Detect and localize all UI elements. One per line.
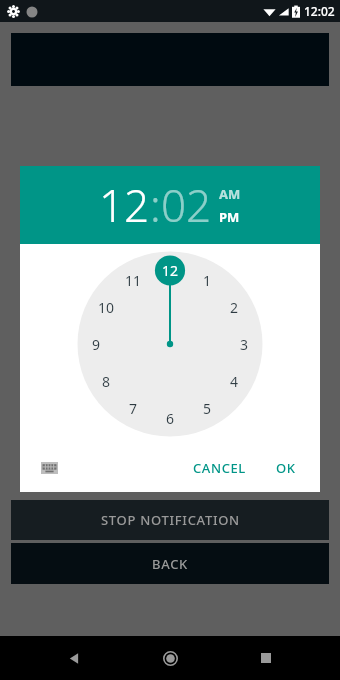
staticText: 5 bbox=[203, 399, 212, 418]
button[interactable]: AM bbox=[219, 185, 241, 203]
staticText: 9 bbox=[92, 335, 101, 354]
staticText: 10 bbox=[98, 298, 115, 317]
button[interactable]: 12 bbox=[99, 175, 150, 235]
staticText: 12 bbox=[162, 261, 179, 280]
button[interactable]: OK bbox=[268, 451, 304, 485]
button[interactable]: 02 bbox=[161, 175, 212, 235]
staticText: 3 bbox=[240, 335, 249, 354]
staticText: : bbox=[150, 175, 161, 235]
staticText: 11 bbox=[125, 271, 142, 290]
staticText: OK bbox=[276, 459, 296, 477]
staticText: BACK bbox=[152, 555, 189, 573]
staticText: 12:02 bbox=[304, 3, 335, 19]
button[interactable]: STOP NOTIFICATION bbox=[11, 500, 329, 540]
button[interactable]: BACK bbox=[11, 543, 329, 584]
button[interactable]: Switch to keyboard input bbox=[34, 453, 64, 483]
staticText: 8 bbox=[102, 372, 111, 391]
button[interactable]: CANCEL bbox=[185, 451, 254, 485]
staticText: CANCEL bbox=[193, 459, 246, 477]
staticText: 6 bbox=[166, 409, 175, 428]
button[interactable]: PM bbox=[219, 208, 240, 226]
staticText: 1 bbox=[203, 271, 212, 290]
button[interactable]: 1 bbox=[70, 244, 270, 444]
staticText: 7 bbox=[129, 399, 138, 418]
staticText: 4 bbox=[230, 372, 239, 391]
button[interactable]: Recent apps bbox=[244, 636, 288, 680]
staticText: 2 bbox=[230, 298, 239, 317]
staticText: STOP NOTIFICATION bbox=[101, 511, 240, 529]
button[interactable]: Back bbox=[52, 636, 96, 680]
button[interactable]: Home bbox=[148, 636, 192, 680]
